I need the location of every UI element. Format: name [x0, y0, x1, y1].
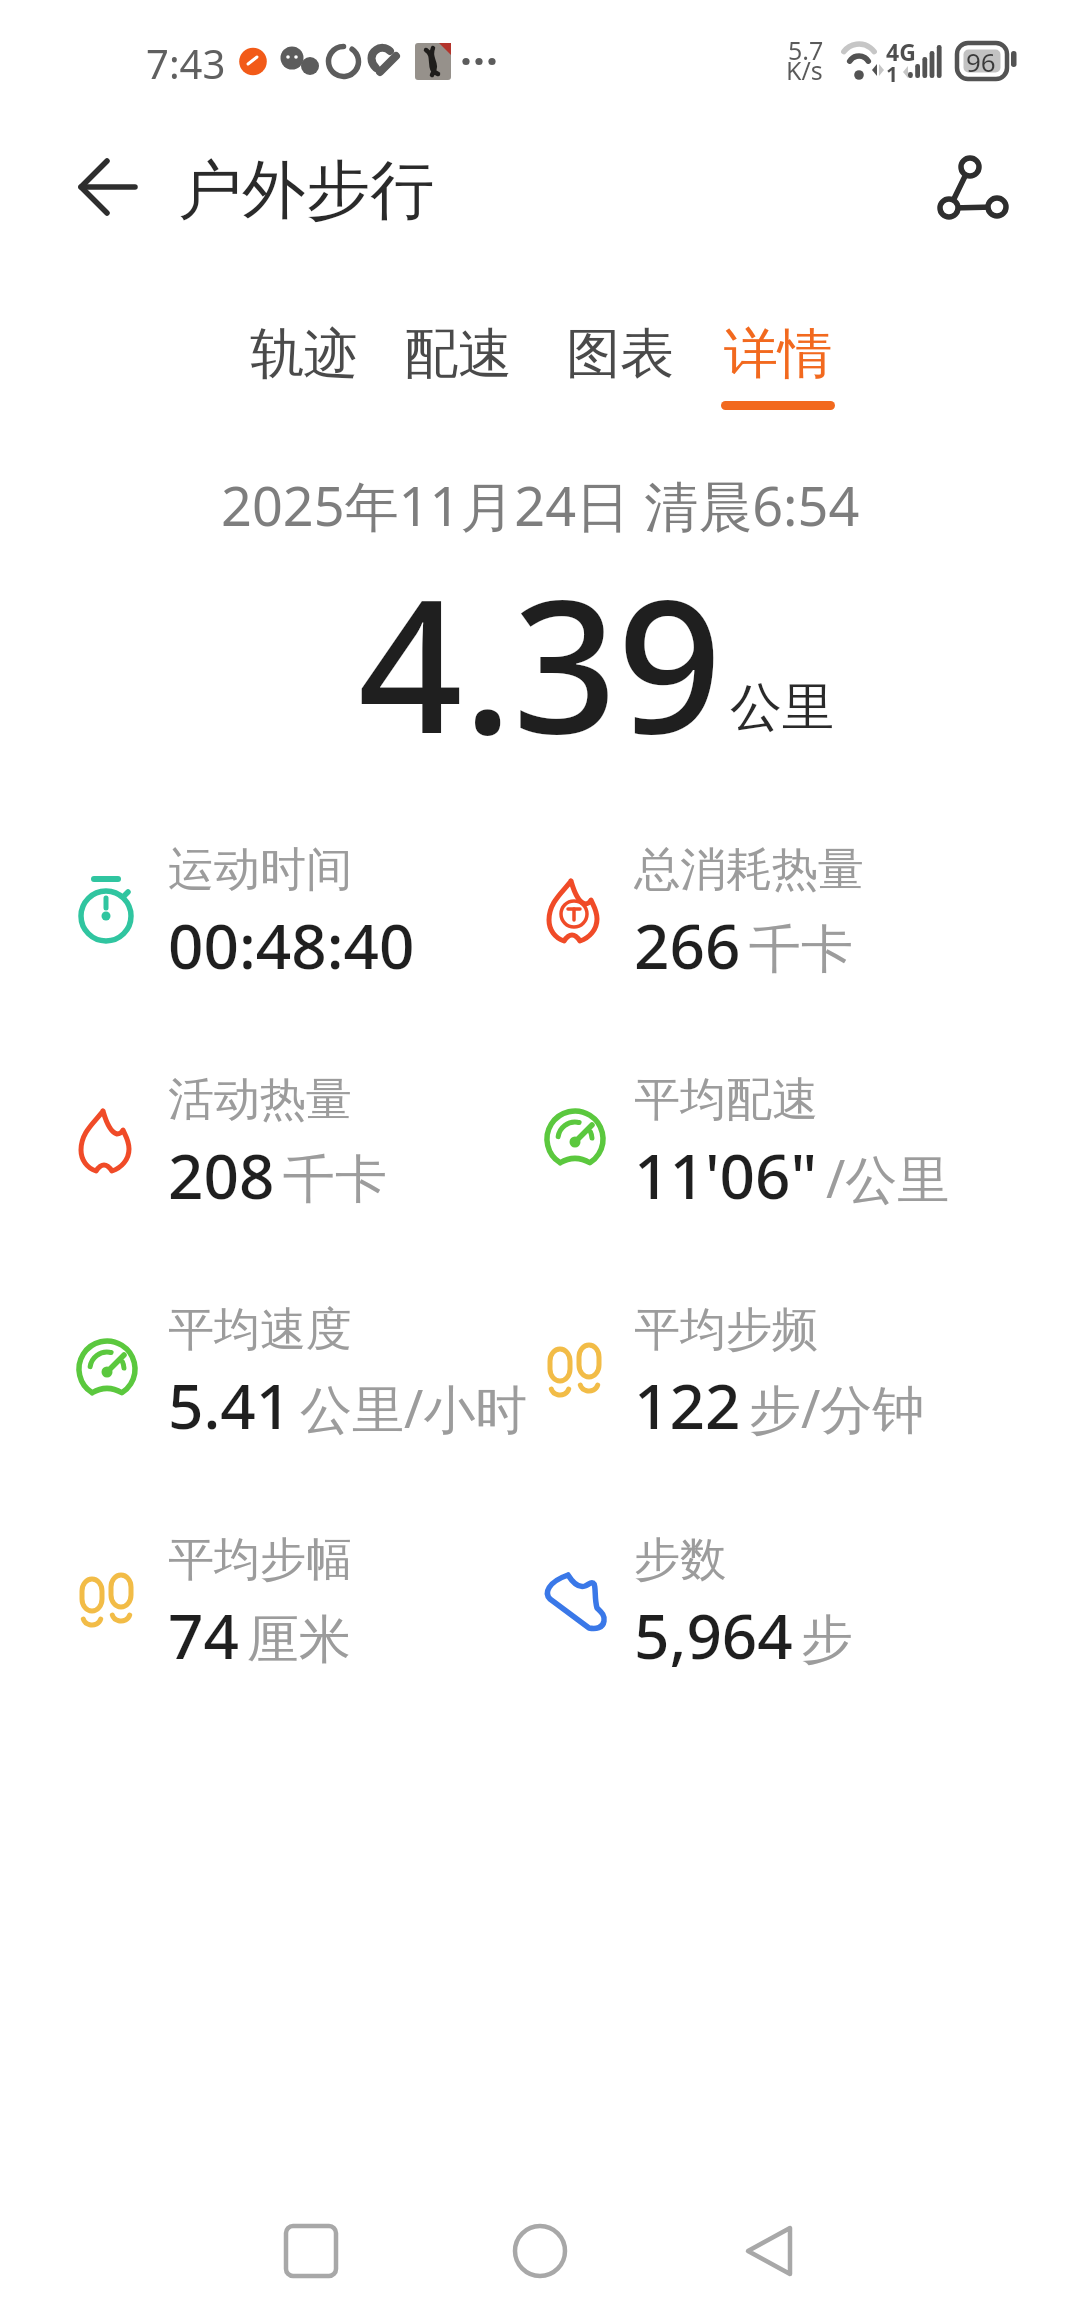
staticText: 详情 — [724, 320, 832, 388]
staticText: 图表 — [566, 320, 674, 388]
button[interactable]: 图表 — [550, 318, 690, 390]
staticText: 00:48:40 — [168, 903, 415, 987]
staticText: 步 — [801, 1607, 853, 1673]
staticText: 步数 — [634, 1531, 726, 1589]
button[interactable]: 配速 — [388, 318, 528, 390]
button[interactable] — [66, 152, 152, 226]
staticText: 平均配速 — [634, 1071, 818, 1129]
staticText: /公里 — [826, 1142, 950, 1213]
staticText: 11'06" — [634, 1133, 818, 1217]
staticText: 74 — [168, 1593, 239, 1677]
button[interactable] — [720, 2202, 818, 2300]
button[interactable]: 轨迹 — [234, 318, 374, 390]
staticText: 轨迹 — [250, 320, 358, 388]
button[interactable] — [262, 2202, 360, 2300]
staticText: 1 — [886, 60, 899, 84]
button[interactable] — [491, 2202, 589, 2300]
staticText: 266 — [634, 903, 741, 987]
staticText: 户外步行 — [178, 150, 434, 231]
button[interactable] — [928, 148, 1018, 228]
staticText: 平均速度 — [168, 1301, 352, 1359]
staticText: 平均步频 — [634, 1301, 818, 1359]
staticText: 5,964 — [634, 1593, 793, 1677]
staticText: 122 — [634, 1363, 741, 1447]
staticText: 运动时间 — [168, 841, 352, 899]
staticText: 2025年11月24日 清晨6:54 — [221, 468, 860, 538]
staticText: 208 — [168, 1133, 275, 1217]
staticText: 公里 — [730, 675, 834, 741]
staticText: 配速 — [404, 320, 512, 388]
staticText: K/s — [786, 53, 823, 81]
staticText: 7:43 — [146, 36, 226, 90]
staticText: 96 — [966, 44, 996, 78]
staticText: 4G — [886, 36, 916, 62]
button[interactable]: 详情 — [708, 318, 848, 390]
staticText: 活动热量 — [168, 1071, 352, 1129]
staticText: 平均步幅 — [168, 1531, 352, 1589]
staticText: 千卡 — [283, 1147, 387, 1213]
staticText: 5.41 — [168, 1363, 292, 1447]
staticText: 总消耗热量 — [634, 841, 864, 899]
staticText: 5.7 — [788, 33, 824, 61]
staticText: 厘米 — [247, 1607, 351, 1673]
staticText: 4.39 — [358, 537, 722, 757]
staticText: 千卡 — [749, 917, 853, 983]
staticText: 步/分钟 — [749, 1372, 925, 1443]
staticText: 公里/小时 — [300, 1372, 528, 1443]
